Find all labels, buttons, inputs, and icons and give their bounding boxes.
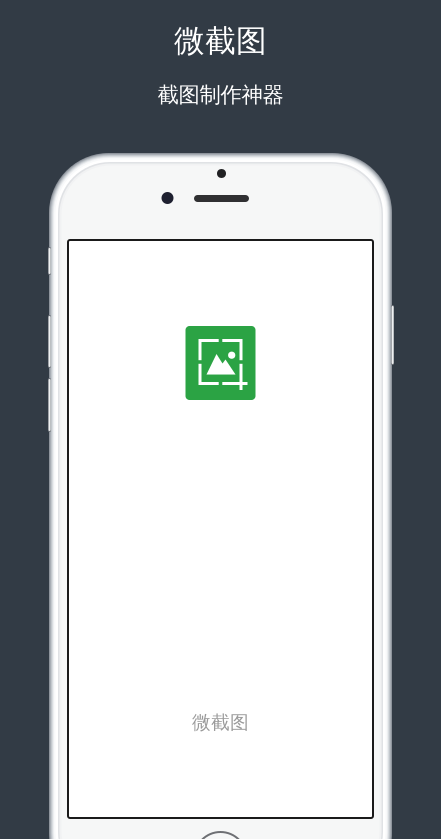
staticText: 微截图 (174, 22, 267, 60)
staticText: 微截图 (192, 711, 249, 734)
staticText: 截图制作神器 (157, 82, 283, 108)
button[interactable]: 微截图 (185, 326, 255, 400)
